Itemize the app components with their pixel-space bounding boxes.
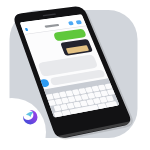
button[interactable] [0, 0, 150, 150]
